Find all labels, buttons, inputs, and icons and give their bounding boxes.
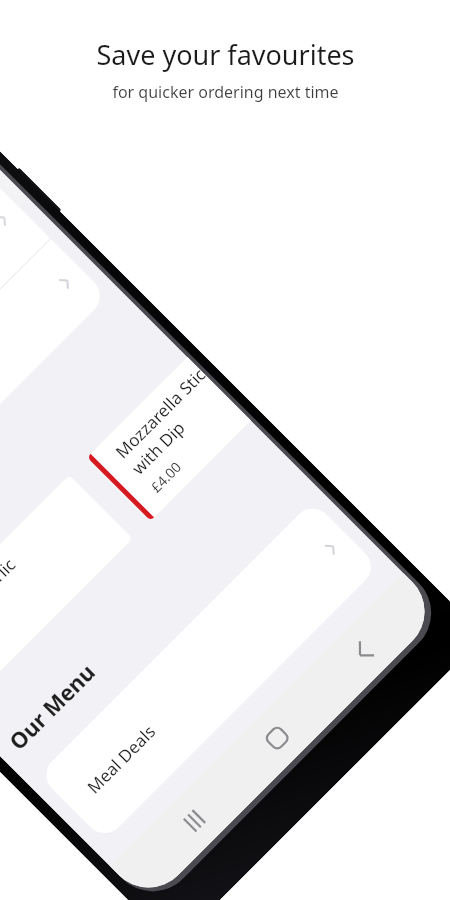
staticText: for quicker ordering next time xyxy=(112,81,339,103)
staticText: Save your favourites xyxy=(96,36,355,73)
staticText: Cheesy Garlic xyxy=(0,553,20,645)
staticText: £3.50 xyxy=(0,640,3,679)
staticText: with Dip xyxy=(127,416,190,479)
button[interactable]: Mozzarella Sticks xyxy=(87,357,251,521)
button[interactable]: Back xyxy=(329,619,397,686)
button[interactable]: Recent apps xyxy=(160,787,228,855)
button[interactable]: Meal Deals xyxy=(38,500,379,841)
staticText: Our Menu xyxy=(2,657,101,756)
button[interactable]: Meal Deals xyxy=(38,500,379,841)
staticText: £4.00 xyxy=(146,457,185,496)
button[interactable]: Cheesy Garlic xyxy=(0,475,133,703)
button[interactable]: Home xyxy=(243,704,311,772)
button[interactable]: Loaded Fries xyxy=(0,172,50,512)
staticText: Meal Deals xyxy=(82,720,160,798)
button[interactable]: Chicken Wings xyxy=(0,104,108,570)
button[interactable]: Onion Rings xyxy=(0,239,108,570)
staticText: Mozzarella Sticks xyxy=(110,363,210,463)
